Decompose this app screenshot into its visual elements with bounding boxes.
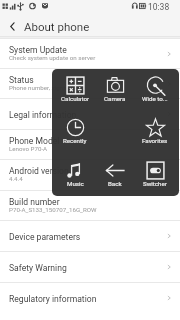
button[interactable]: Status (0, 69, 180, 98)
staticText: Recently (63, 137, 87, 144)
button[interactable]: Music (55, 154, 95, 196)
staticText: Music (67, 180, 84, 187)
button[interactable]: Legal information (0, 99, 180, 129)
staticText: 10:38 (148, 2, 170, 12)
button[interactable]: Favorites (135, 111, 175, 153)
button[interactable]: Device parameters (0, 221, 180, 251)
staticText: Device parameters (9, 232, 81, 242)
staticText: Favorites (142, 137, 168, 144)
staticText: Back (108, 180, 122, 187)
button[interactable]: Safety Warning (0, 252, 180, 282)
staticText: System Update (9, 45, 67, 55)
staticText: 4.4.4 (9, 175, 23, 182)
staticText: About phone (24, 20, 90, 33)
button[interactable]: System Update (0, 39, 180, 68)
button[interactable]: Switcher (135, 154, 175, 196)
button[interactable]: Phone Model (0, 130, 180, 159)
staticText: P70-A_S133_150707_16G_ROW (9, 206, 97, 213)
staticText: Build number (9, 197, 60, 207)
staticText: Check system update on server (9, 54, 96, 61)
button[interactable]: Back (0, 14, 24, 38)
button[interactable]: Regulatory information (0, 283, 180, 312)
staticText: Lenovo P70-A (9, 145, 48, 152)
staticText: Phone Model (9, 136, 60, 146)
staticText: Camera (104, 95, 126, 102)
staticText: Legal information (9, 110, 77, 120)
button[interactable]: Back (95, 154, 135, 196)
staticText: Switcher (143, 180, 167, 187)
staticText: Safety Warning (9, 263, 67, 273)
staticText: Phone number, signal, etc. (9, 84, 81, 91)
button[interactable]: Recently (55, 111, 95, 153)
button[interactable]: Build number (0, 191, 180, 220)
staticText: Regulatory information (9, 294, 97, 304)
button[interactable]: Calculator (55, 69, 95, 111)
button[interactable]: Android version (0, 160, 180, 190)
staticText: Android version (9, 166, 69, 176)
button[interactable]: Wide to... (135, 69, 175, 111)
staticText: Wide to... (142, 95, 168, 102)
button[interactable]: Camera (95, 69, 135, 111)
staticText: Status (9, 75, 34, 85)
staticText: Calculator (61, 95, 90, 102)
